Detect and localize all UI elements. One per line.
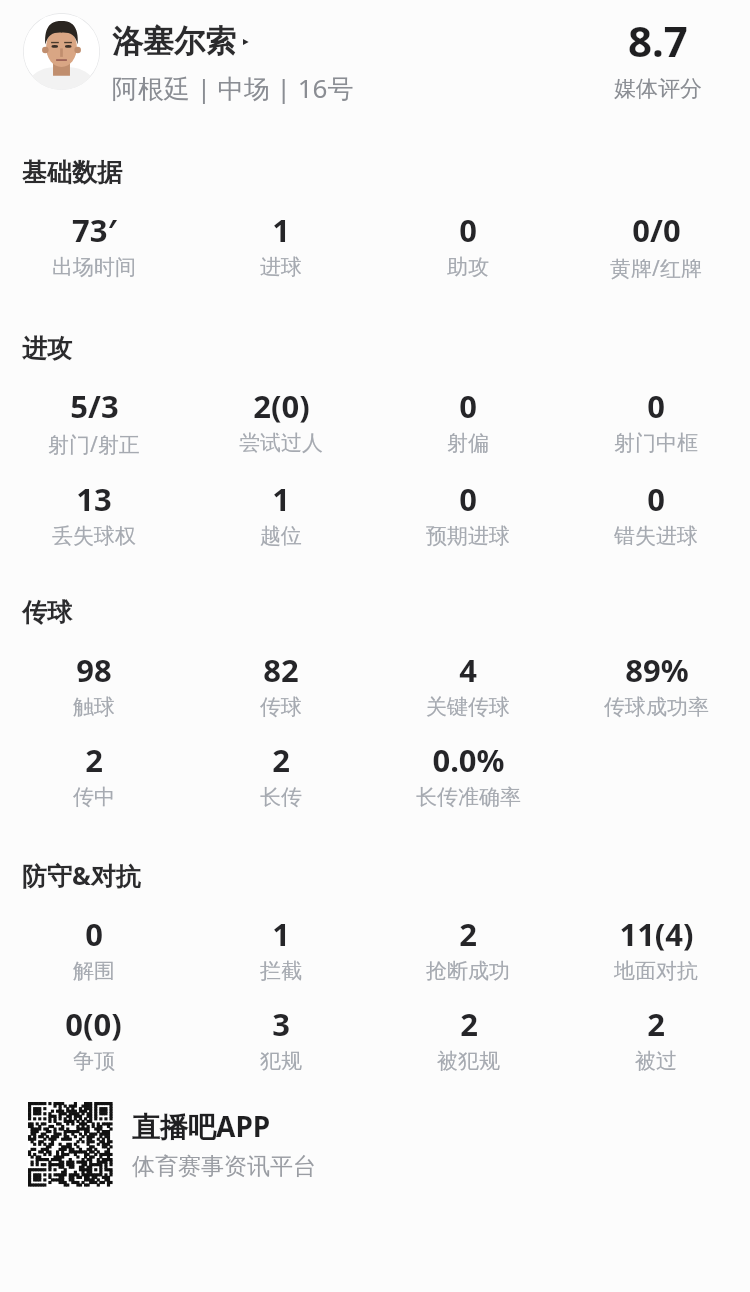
staticText: 抢断成功 <box>426 958 510 984</box>
button[interactable]: 4 <box>426 649 510 720</box>
button[interactable]: 0 <box>447 209 489 280</box>
staticText: 0 <box>459 478 477 520</box>
button[interactable]: 0 <box>426 478 510 549</box>
staticText: 1 <box>272 913 290 955</box>
staticText: 0 <box>85 913 103 955</box>
button[interactable]: 89% <box>604 649 709 720</box>
staticText: 1 <box>272 209 290 251</box>
staticText: 0/0 <box>632 209 681 251</box>
staticText: 体育赛事资讯平台 <box>132 1152 316 1181</box>
button[interactable]: 0 <box>614 385 698 456</box>
staticText: 1 <box>272 478 290 520</box>
staticText: 8.7 <box>628 12 688 69</box>
staticText: 13 <box>76 478 112 520</box>
button[interactable]: 2 <box>426 913 510 984</box>
button[interactable]: 3 <box>260 1003 302 1074</box>
button[interactable]: 5/3 <box>48 385 140 459</box>
staticText: 长传准确率 <box>416 784 521 810</box>
staticText: 进球 <box>260 254 302 280</box>
staticText: 争顶 <box>73 1048 115 1074</box>
staticText: 丢失球权 <box>52 523 136 549</box>
staticText: 错失进球 <box>614 523 698 549</box>
staticText: 黄牌/红牌 <box>610 254 702 283</box>
staticText: 阿根廷 | 中场 | 16号 <box>112 70 354 106</box>
staticText: 4 <box>459 649 477 691</box>
button[interactable]: 1 <box>260 209 302 280</box>
button[interactable]: Player photo <box>23 13 100 90</box>
other: QR code <box>28 1102 112 1186</box>
staticText: 2 <box>85 739 103 781</box>
staticText: 2 <box>459 913 477 955</box>
staticText: 犯规 <box>260 1048 302 1074</box>
staticText: 2 <box>460 1003 478 1045</box>
button[interactable]: 98 <box>73 649 115 720</box>
staticText: 进攻 <box>22 333 72 364</box>
staticText: 射门中框 <box>614 430 698 456</box>
staticText: 解围 <box>73 958 115 984</box>
staticText: 被犯规 <box>437 1048 500 1074</box>
button[interactable]: 73′ <box>52 209 136 280</box>
button[interactable]: 1 <box>260 478 302 549</box>
button[interactable]: 11(4) <box>614 913 698 984</box>
button[interactable]: 0 <box>447 385 489 456</box>
staticText: 传球成功率 <box>604 694 709 720</box>
staticText: 传球 <box>260 694 302 720</box>
staticText: 拦截 <box>260 958 302 984</box>
staticText: 82 <box>263 649 299 691</box>
staticText: 0 <box>459 209 477 251</box>
button[interactable]: 13 <box>52 478 136 549</box>
button[interactable]: 82 <box>260 649 302 720</box>
staticText: 0(0) <box>65 1003 122 1045</box>
staticText: 关键传球 <box>426 694 510 720</box>
staticText: 0.0% <box>432 739 505 781</box>
staticText: 2 <box>272 739 290 781</box>
staticText: 89% <box>625 649 689 691</box>
button[interactable]: 2 <box>635 1003 677 1074</box>
staticText: 射偏 <box>447 430 489 456</box>
staticText: 洛塞尔索 <box>112 22 236 61</box>
button[interactable]: 洛塞尔索 <box>112 22 354 106</box>
button[interactable]: QR code <box>28 1102 750 1186</box>
staticText: 直播吧APP <box>132 1107 271 1145</box>
staticText: 5/3 <box>70 385 119 427</box>
button[interactable]: 2 <box>437 1003 500 1074</box>
button[interactable]: 0 <box>614 478 698 549</box>
button[interactable]: 0(0) <box>65 1003 122 1074</box>
button[interactable]: 2 <box>260 739 302 810</box>
staticText: 传中 <box>73 784 115 810</box>
button[interactable]: 0 <box>73 913 115 984</box>
staticText: 媒体评分 <box>614 75 702 103</box>
staticText: 11(4) <box>619 913 694 955</box>
button[interactable]: 2 <box>73 739 115 810</box>
staticText: 0 <box>647 385 665 427</box>
staticText: 预期进球 <box>426 523 510 549</box>
button[interactable]: 2(0) <box>239 385 323 456</box>
staticText: 出场时间 <box>52 254 136 280</box>
staticText: 0 <box>647 478 665 520</box>
staticText: 2(0) <box>253 385 310 427</box>
staticText: 触球 <box>73 694 115 720</box>
staticText: 地面对抗 <box>614 958 698 984</box>
staticText: 防守&对抗 <box>22 858 141 892</box>
staticText: 越位 <box>260 523 302 549</box>
button[interactable]: 8.7 <box>614 12 702 103</box>
button[interactable]: 1 <box>260 913 302 984</box>
staticText: 射门/射正 <box>48 430 140 459</box>
staticText: 基础数据 <box>22 157 122 188</box>
staticText: 尝试过人 <box>239 430 323 456</box>
staticText: 98 <box>76 649 112 691</box>
staticText: 助攻 <box>447 254 489 280</box>
button[interactable]: 0/0 <box>610 209 702 283</box>
staticText: 2 <box>647 1003 665 1045</box>
staticText: 长传 <box>260 784 302 810</box>
staticText: 传球 <box>22 597 72 628</box>
button[interactable]: 0.0% <box>416 739 521 810</box>
staticText: 3 <box>272 1003 290 1045</box>
staticText: 被过 <box>635 1048 677 1074</box>
staticText: 0 <box>459 385 477 427</box>
staticText: 73′ <box>72 209 117 251</box>
